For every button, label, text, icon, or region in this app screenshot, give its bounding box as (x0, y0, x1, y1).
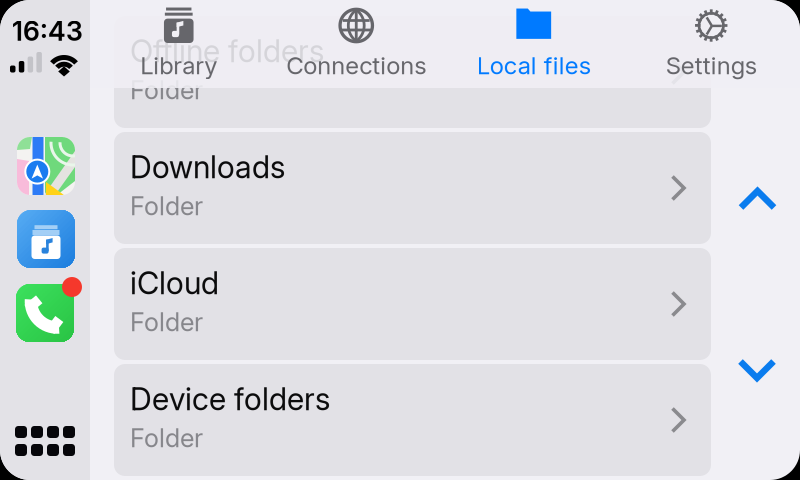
button[interactable]: Downloads (114, 132, 711, 244)
button[interactable]: Phone (16, 284, 82, 342)
button[interactable]: Scroll up (737, 187, 777, 211)
button[interactable]: Device folders (114, 364, 711, 476)
staticText: Folder (130, 191, 203, 221)
button[interactable]: Maps (17, 137, 75, 195)
staticText: Device folders (130, 381, 330, 418)
button[interactable]: App grid (15, 426, 75, 456)
button[interactable]: Scroll down (737, 358, 777, 382)
button[interactable]: Offline folders (114, 16, 711, 128)
button[interactable]: Local files (445, 0, 622, 88)
staticText: Offline folders (130, 33, 324, 70)
staticText: 16:43 (12, 15, 83, 47)
staticText: Settings (666, 51, 757, 80)
button[interactable]: Library (90, 0, 267, 88)
staticText: Connections (286, 51, 426, 80)
button[interactable]: iCloud (114, 248, 711, 360)
button[interactable]: Connections (267, 0, 445, 88)
staticText: Downloads (130, 149, 285, 186)
staticText: iCloud (130, 265, 219, 302)
staticText: Folder (130, 75, 203, 105)
staticText: Local files (477, 51, 591, 80)
button[interactable]: Music library (17, 210, 75, 268)
staticText: Folder (130, 423, 203, 453)
staticText: Folder (130, 307, 203, 337)
staticText: Library (140, 51, 217, 80)
button[interactable]: Settings (622, 0, 800, 88)
